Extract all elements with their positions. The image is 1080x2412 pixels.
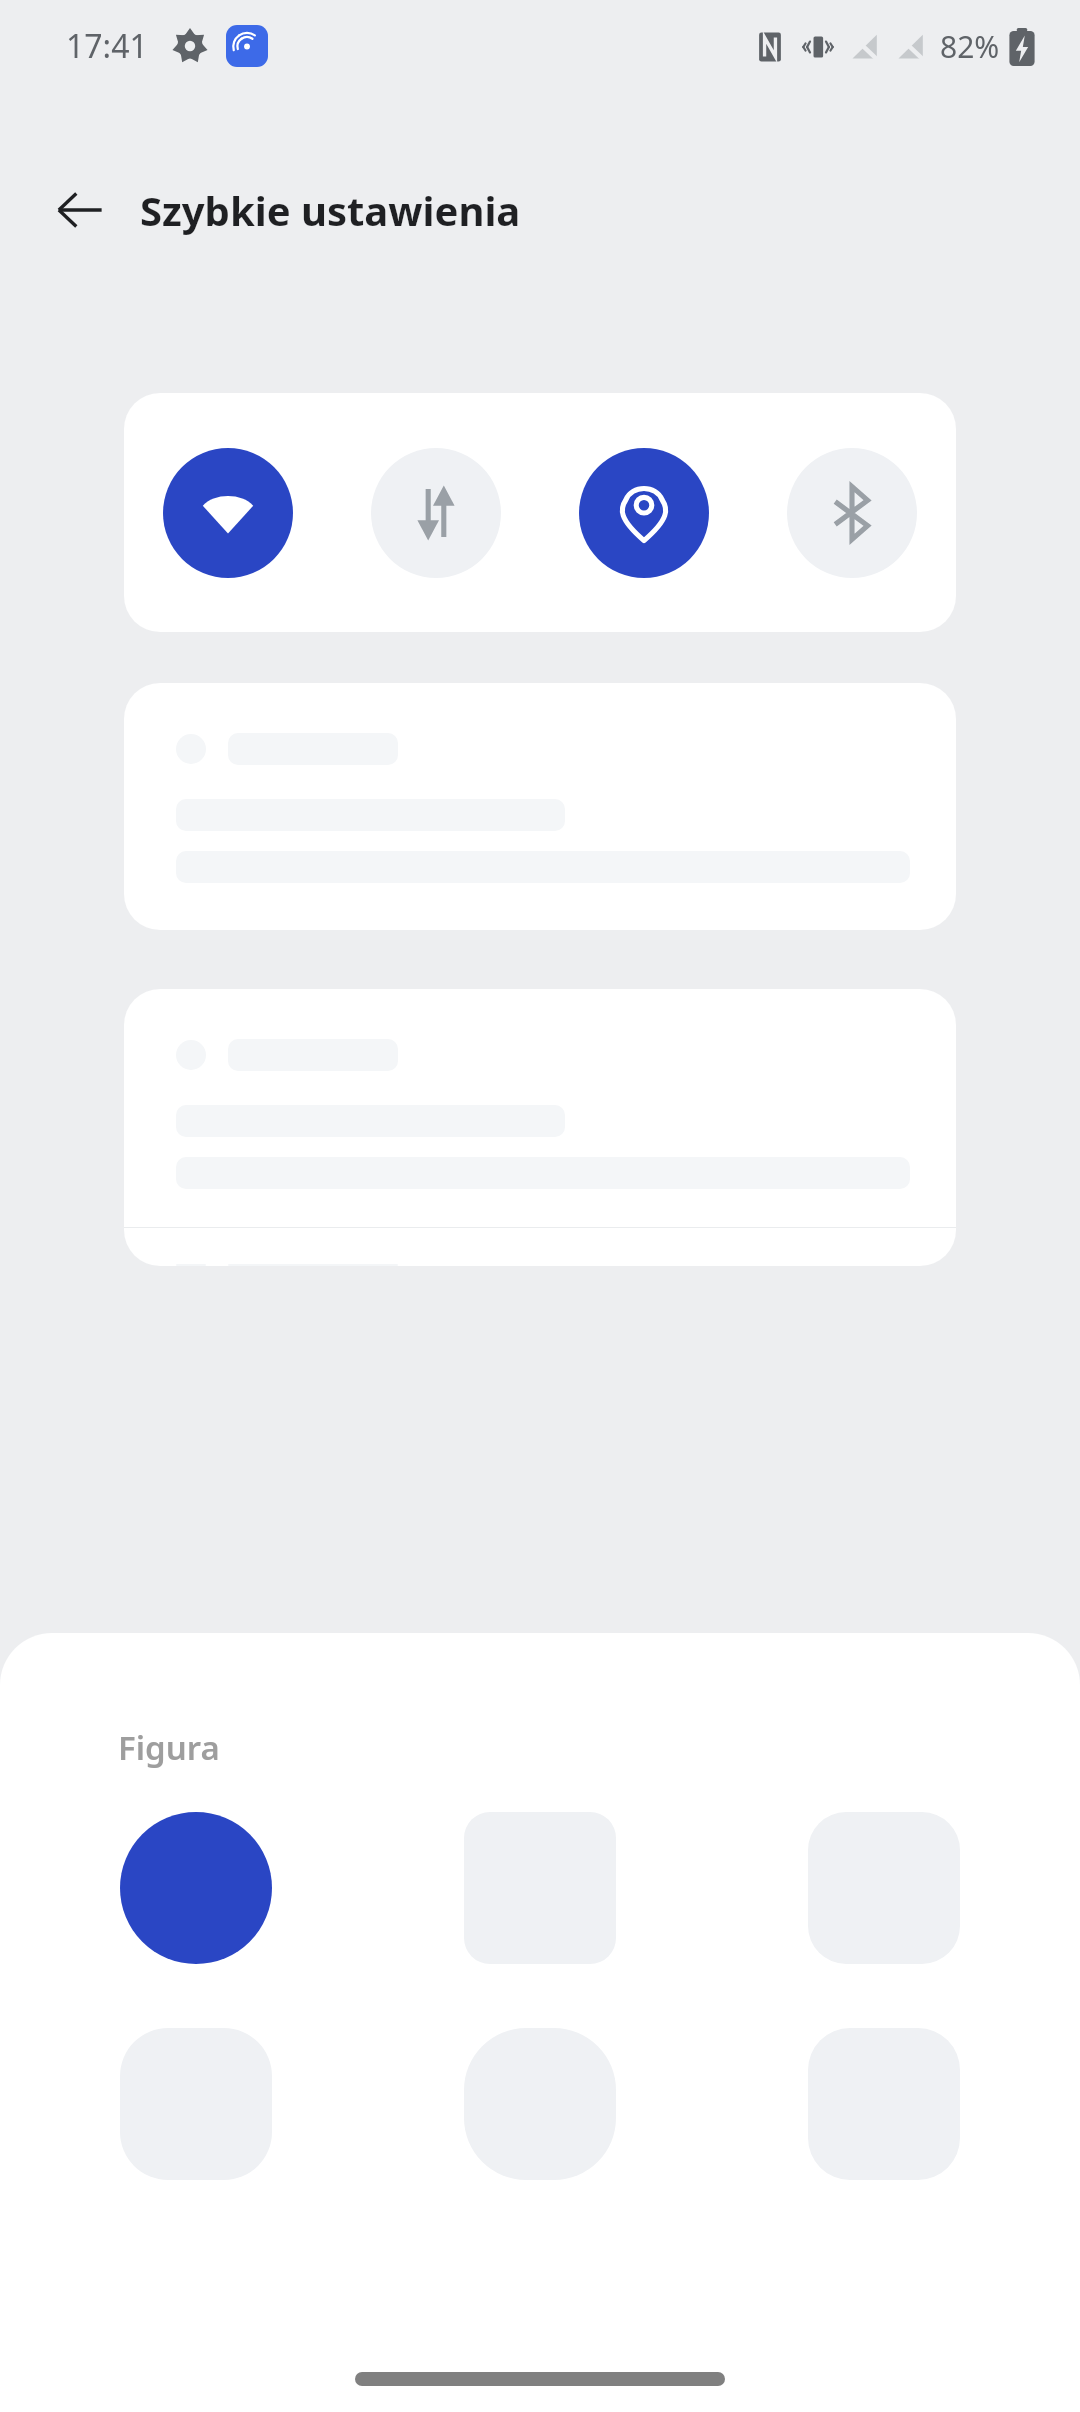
staticText: 17:41 [66,24,148,68]
staticText: Szybkie ustawienia [140,183,521,237]
button[interactable]: Wstecz [40,170,120,250]
button[interactable]: Wi-Fi [163,448,293,578]
button[interactable]: Figura 3 [808,1812,960,1964]
button[interactable]: Lokalizacja [579,448,709,578]
button[interactable]: Figura 6 [808,2028,960,2180]
button[interactable]: Figura 4 [120,2028,272,2180]
button[interactable] [124,989,956,1266]
button[interactable]: Bluetooth [787,448,917,578]
button[interactable]: Figura 5 [464,2028,616,2180]
button[interactable] [124,683,956,930]
staticText: Figura [118,1725,220,1770]
button[interactable]: Figura 1 [120,1812,272,1964]
button[interactable]: Transfer danych [371,448,501,578]
staticText: 82% [940,26,1000,67]
